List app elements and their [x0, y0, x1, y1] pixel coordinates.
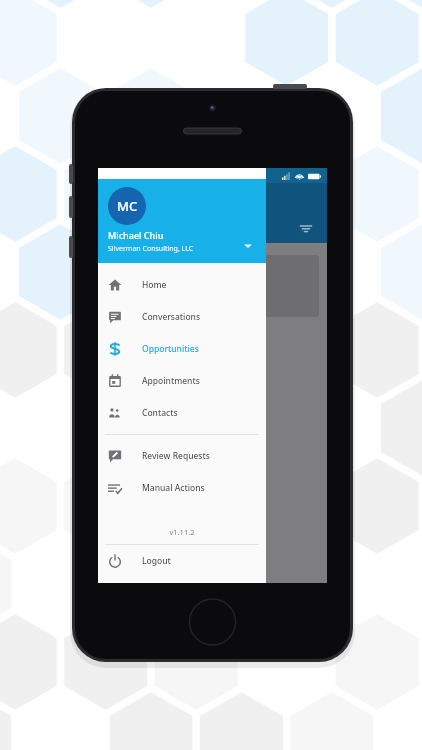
- button[interactable]: Rec: [179, 255, 245, 317]
- button[interactable]: MC: [98, 179, 266, 263]
- staticText: Michael Chiu: [108, 229, 164, 241]
- staticText: Home: [142, 279, 167, 291]
- button[interactable]: Appointments: [98, 365, 266, 397]
- button[interactable]: Manual Actions: [98, 472, 266, 504]
- staticText: Appointments: [142, 375, 200, 387]
- button[interactable]: Filter: [299, 221, 313, 235]
- button[interactable]: Logout: [98, 545, 266, 577]
- staticText: Silverman Consulting, LLC: [108, 244, 194, 254]
- button[interactable]: Conversations: [98, 301, 266, 333]
- staticText: MC: [117, 197, 138, 215]
- button[interactable]: Review Requests: [98, 440, 266, 472]
- button[interactable]: Contacts: [98, 397, 266, 429]
- button[interactable]: Opportunities: [98, 333, 266, 365]
- staticText: Contacts: [142, 407, 178, 419]
- button[interactable]: Home: [98, 269, 266, 301]
- button[interactable]: [106, 255, 171, 317]
- button[interactable]: [253, 255, 319, 317]
- staticText: Logout: [142, 555, 171, 567]
- staticText: Opportunities: [142, 343, 199, 355]
- staticText: v1.11.2: [98, 527, 266, 537]
- staticText: Review Requests: [142, 450, 210, 462]
- staticText: Conversations: [142, 311, 201, 323]
- staticText: Manual Actions: [142, 482, 205, 494]
- button[interactable]: Switch account: [243, 241, 253, 251]
